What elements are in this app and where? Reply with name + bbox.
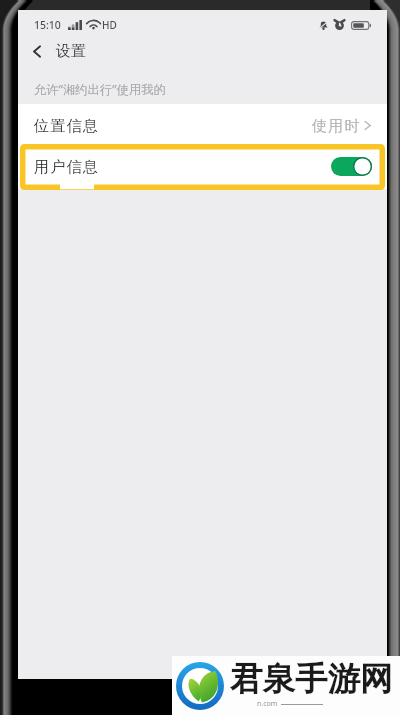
button[interactable]: 位置信息	[18, 110, 387, 140]
staticText: 15:10	[34, 18, 61, 32]
staticText: n.com	[257, 699, 278, 709]
staticText: 用户信息	[34, 157, 100, 176]
staticText: HD	[102, 18, 117, 32]
staticText: 设置	[56, 42, 86, 61]
button[interactable]: 返回	[22, 36, 52, 66]
button[interactable]: 用户信息	[18, 151, 387, 181]
staticText: 位置信息	[34, 116, 100, 135]
button[interactable]: 用户信息开关	[331, 157, 372, 176]
staticText: 允许“湘约出行”使用我的	[34, 81, 166, 98]
staticText: 使用时	[312, 116, 361, 135]
staticText: 君泉手游网	[230, 659, 393, 700]
